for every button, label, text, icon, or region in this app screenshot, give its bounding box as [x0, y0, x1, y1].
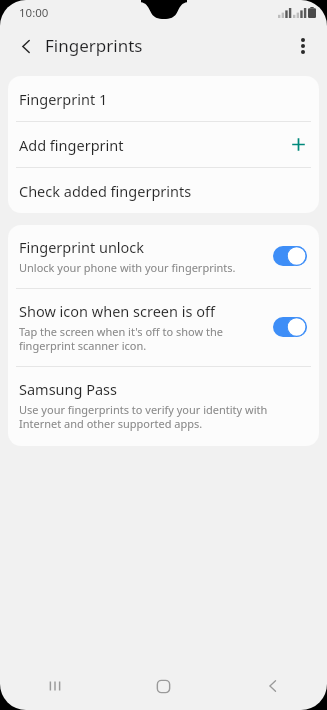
- staticText: Add fingerprint: [19, 135, 124, 155]
- button[interactable]: Add fingerprint: [8, 122, 319, 167]
- button[interactable]: Samsung Pass: [8, 367, 319, 446]
- button[interactable]: Fingerprint unlock: [8, 225, 319, 288]
- staticText: Fingerprint unlock: [19, 237, 145, 257]
- button[interactable]: Back: [8, 28, 44, 64]
- staticText: Tap the screen when it's off to show the…: [19, 324, 223, 353]
- staticText: Fingerprints: [45, 34, 143, 57]
- button[interactable]: Check added fingerprints: [8, 168, 319, 213]
- button[interactable]: Toggle: [273, 246, 307, 266]
- button[interactable]: Fingerprint 1: [8, 76, 319, 121]
- button[interactable]: Show icon when screen is off: [8, 289, 319, 366]
- staticText: Use your fingerprints to verify your ide…: [19, 402, 268, 431]
- button[interactable]: Home: [109, 662, 218, 710]
- staticText: Unlock your phone with your fingerprints…: [19, 260, 236, 275]
- button[interactable]: Back: [218, 662, 327, 710]
- staticText: Samsung Pass: [19, 379, 118, 399]
- staticText: 10:00: [19, 5, 49, 21]
- button[interactable]: Recent apps: [0, 662, 109, 710]
- staticText: Check added fingerprints: [19, 181, 192, 201]
- staticText: Fingerprint 1: [19, 89, 108, 109]
- button[interactable]: More options: [285, 28, 321, 64]
- staticText: Show icon when screen is off: [19, 301, 215, 321]
- button[interactable]: Toggle: [273, 317, 307, 337]
